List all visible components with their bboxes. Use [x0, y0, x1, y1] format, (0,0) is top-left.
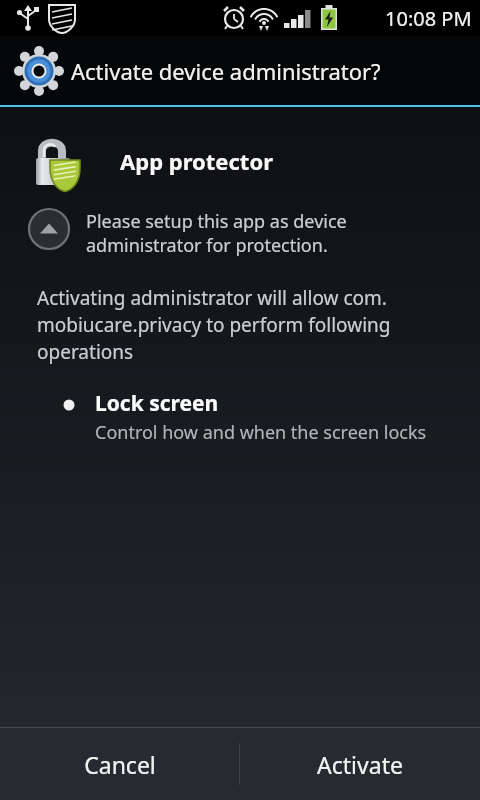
staticText: Activate device administrator? [71, 56, 381, 86]
button[interactable]: Collapse details [27, 207, 71, 251]
staticText: Activate [317, 749, 403, 780]
button[interactable]: Activate [240, 728, 480, 800]
staticText: Please setup this app as device administ… [86, 209, 456, 257]
staticText: Lock screen [95, 389, 219, 418]
staticText: Cancel [84, 749, 156, 780]
staticText: Control how and when the screen locks [95, 420, 427, 445]
staticText: App protector [120, 146, 273, 176]
staticText: 10:08 PM [385, 5, 472, 32]
button[interactable]: Cancel [0, 728, 239, 800]
staticText: Activating administrator will allow com.… [37, 285, 450, 365]
